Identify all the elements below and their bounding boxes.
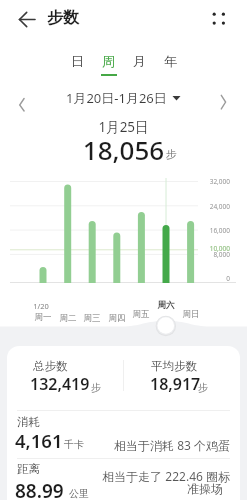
button[interactable] [123,346,240,409]
button[interactable] [213,88,237,114]
staticText: 1月25日 [0,118,247,136]
staticText: 步 [198,381,208,394]
staticText: 1/20 [25,301,57,311]
button[interactable]: 周 [93,53,124,76]
staticText: 相当于走了 222.46 圈标 [80,468,230,484]
staticText: 周四 [101,313,133,324]
staticText: 公里 [69,487,89,500]
staticText: 0 [190,274,230,283]
staticText: 周一 [27,312,59,323]
staticText: 24,000 [190,202,230,211]
staticText: 132,419 [30,373,90,395]
button[interactable]: 1月20日-1月26日 [0,89,247,105]
staticText: 距离 [17,462,40,476]
button[interactable]: 日 [62,53,93,76]
staticText: 准操场 [80,481,223,496]
staticText: 消耗 [17,415,40,429]
button[interactable] [13,7,41,33]
staticText: 相当于消耗 83 个鸡蛋 [80,437,230,453]
staticText: 月 [133,53,146,69]
staticText: 10,000 [190,244,230,253]
staticText: 总步数 [33,359,68,373]
button[interactable]: 年 [155,53,186,76]
staticText: 8,000 [190,250,230,259]
staticText: 周六 [150,300,182,311]
staticText: 日 [71,53,84,69]
staticText: 千卡 [64,438,84,451]
staticText: 16,000 [190,226,230,235]
staticText: 步数 [47,8,79,28]
staticText: 18,917 [150,373,201,395]
staticText: 步 [91,381,101,394]
staticText: 32,000 [190,177,230,186]
button[interactable] [7,458,240,500]
button[interactable] [7,346,123,409]
staticText: 周二 [52,313,84,324]
button[interactable]: 月 [124,53,155,76]
staticText: 年 [164,53,177,69]
staticText: 1月20日-1月26日 [66,89,167,105]
staticText: 周三 [76,313,108,324]
staticText: 88.99 [15,478,64,500]
staticText: 周日 [175,309,207,320]
button[interactable] [7,410,240,458]
button[interactable] [206,6,232,32]
staticText: 平均步数 [151,359,197,373]
staticText: 周五 [125,309,157,320]
button[interactable] [12,90,32,116]
staticText: 18,056 [0,132,247,167]
staticText: 4,161 [15,428,63,453]
staticText: 步 [166,147,177,161]
staticText: 周 [102,53,115,69]
